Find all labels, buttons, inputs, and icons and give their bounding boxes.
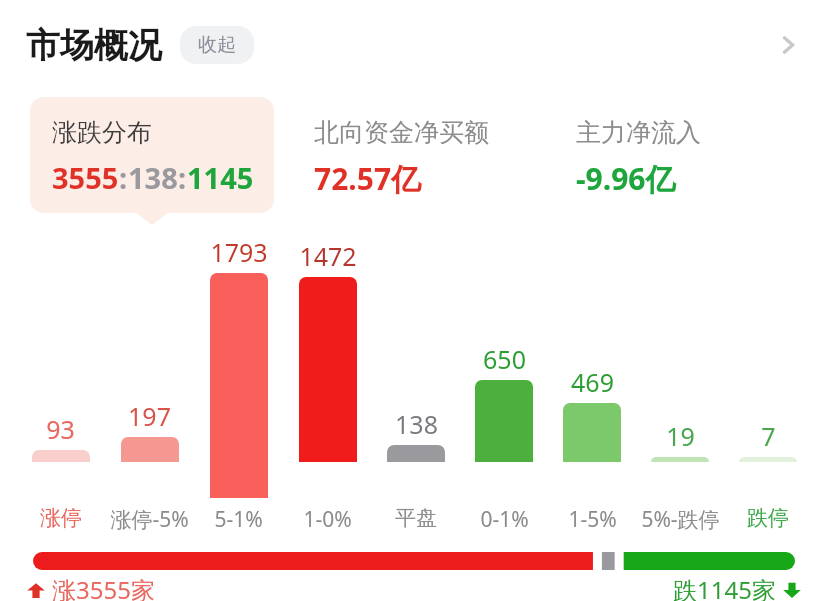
staticText: 1-5% xyxy=(568,505,617,534)
staticText: 收起 xyxy=(198,33,236,57)
staticText: : xyxy=(178,158,187,197)
button[interactable]: More xyxy=(760,17,816,73)
staticText: 7 xyxy=(761,419,776,453)
staticText: 涨跌分布 xyxy=(52,117,152,148)
staticText: 138 xyxy=(395,407,438,441)
staticText: 跌1145家 xyxy=(673,573,776,601)
button[interactable]: 涨跌分布 xyxy=(30,97,274,213)
staticText: -9.96亿 xyxy=(576,158,676,199)
staticText: 涨停-5% xyxy=(110,505,189,534)
staticText: 主力净流入 xyxy=(576,117,701,148)
staticText: 市场概况 xyxy=(26,24,162,67)
staticText: 5-1% xyxy=(214,505,263,534)
staticText: 197 xyxy=(128,399,171,433)
staticText: 138 xyxy=(128,158,178,197)
staticText: 650 xyxy=(483,342,526,376)
staticText: 涨停 xyxy=(40,505,82,531)
staticText: 跌停 xyxy=(747,505,789,531)
staticText: 469 xyxy=(571,365,614,399)
staticText: 93 xyxy=(46,412,75,446)
staticText: 5%-跌停 xyxy=(641,505,720,534)
staticText: 1472 xyxy=(299,239,357,273)
staticText: 1145 xyxy=(187,158,254,197)
staticText: 平盘 xyxy=(395,505,437,531)
button[interactable]: 收起 xyxy=(180,26,254,64)
staticText: 涨3555家 xyxy=(52,573,155,601)
staticText: 19 xyxy=(666,419,695,453)
staticText: 1793 xyxy=(210,235,268,269)
staticText: 3555 xyxy=(52,158,119,197)
staticText: : xyxy=(119,158,128,197)
staticText: 72.57亿 xyxy=(314,158,422,199)
staticText: 北向资金净买额 xyxy=(314,117,489,148)
staticText: 1-0% xyxy=(303,505,352,534)
staticText: 0-1% xyxy=(480,505,529,534)
button[interactable]: 主力净流入 xyxy=(554,97,798,213)
button[interactable]: 北向资金净买额 xyxy=(292,97,536,213)
